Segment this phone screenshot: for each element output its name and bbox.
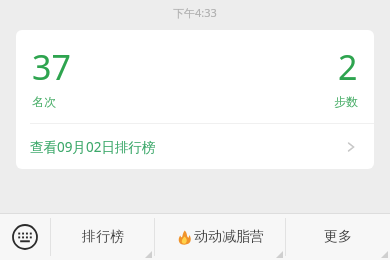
button[interactable]: Keyboard	[0, 214, 50, 260]
staticText: 动动减脂营	[194, 228, 264, 246]
button[interactable]: 排行榜	[51, 214, 154, 260]
button[interactable]: 动动减脂营	[155, 214, 285, 260]
staticText: 下午4:33	[173, 5, 217, 20]
staticText: 查看09月02日排行榜	[30, 138, 156, 156]
staticText: 排行榜	[82, 228, 124, 246]
staticText: 37	[32, 44, 71, 90]
button[interactable]: 更多	[286, 214, 390, 260]
staticText: 名次	[32, 94, 56, 109]
staticText: 步数	[334, 94, 358, 109]
button[interactable]: 查看09月02日排行榜	[16, 124, 374, 169]
staticText: 2	[338, 44, 358, 90]
staticText: 更多	[324, 228, 352, 246]
